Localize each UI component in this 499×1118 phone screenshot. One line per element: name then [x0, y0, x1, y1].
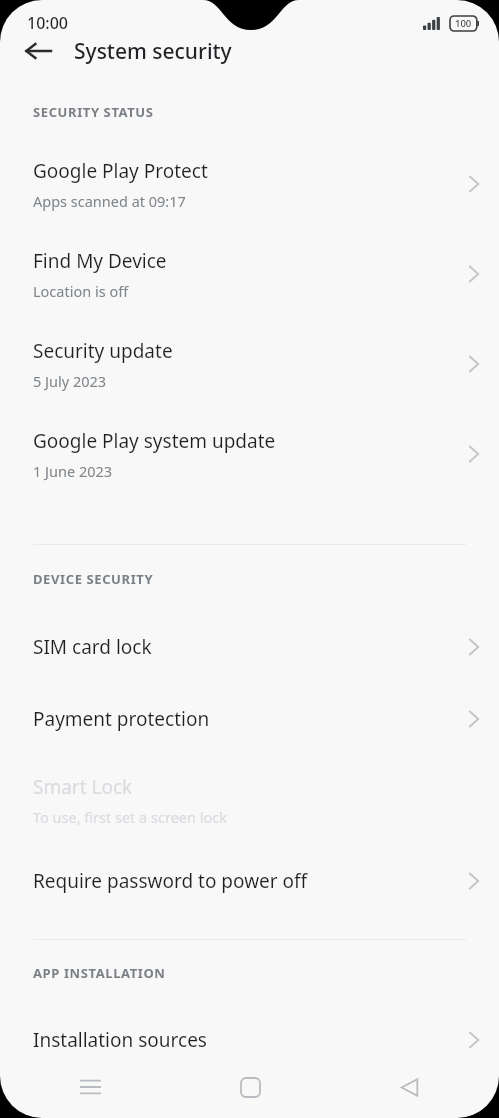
- staticText: 5 July 2023: [33, 371, 107, 391]
- button[interactable]: Require password to power off: [0, 845, 499, 917]
- button[interactable]: Google Play system update: [0, 409, 499, 499]
- button[interactable]: Smart Lock: [0, 755, 499, 845]
- button[interactable]: Installation sources: [0, 1004, 499, 1076]
- staticText: 10:00: [27, 12, 68, 34]
- staticText: To use, first set a screen lock: [33, 807, 227, 827]
- staticText: System security: [74, 37, 232, 66]
- staticText: Google Play Protect: [33, 158, 208, 184]
- staticText: 100: [455, 17, 472, 30]
- button[interactable]: Home: [167, 1056, 333, 1118]
- staticText: Apps scanned at 09:17: [33, 191, 186, 211]
- staticText: Security update: [33, 338, 173, 364]
- button[interactable]: Security update: [0, 319, 499, 409]
- button[interactable]: Google Play Protect: [0, 139, 499, 229]
- button[interactable]: Recent apps: [0, 1056, 167, 1118]
- button[interactable]: Payment protection: [0, 683, 499, 755]
- button[interactable]: Back: [16, 29, 60, 73]
- staticText: Google Play system update: [33, 428, 276, 454]
- staticText: Installation sources: [33, 1027, 207, 1053]
- staticText: Require password to power off: [33, 868, 308, 894]
- staticText: Smart Lock: [33, 774, 133, 800]
- staticText: DEVICE SECURITY: [33, 570, 154, 588]
- staticText: SECURITY STATUS: [33, 103, 154, 121]
- staticText: 1 June 2023: [33, 461, 113, 481]
- staticText: Payment protection: [33, 706, 210, 732]
- button[interactable]: SIM card lock: [0, 611, 499, 683]
- staticText: APP INSTALLATION: [33, 964, 166, 982]
- button[interactable]: Find My Device: [0, 229, 499, 319]
- button[interactable]: Back: [333, 1056, 499, 1118]
- staticText: SIM card lock: [33, 634, 152, 660]
- staticText: Location is off: [33, 281, 129, 301]
- staticText: Find My Device: [33, 248, 167, 274]
